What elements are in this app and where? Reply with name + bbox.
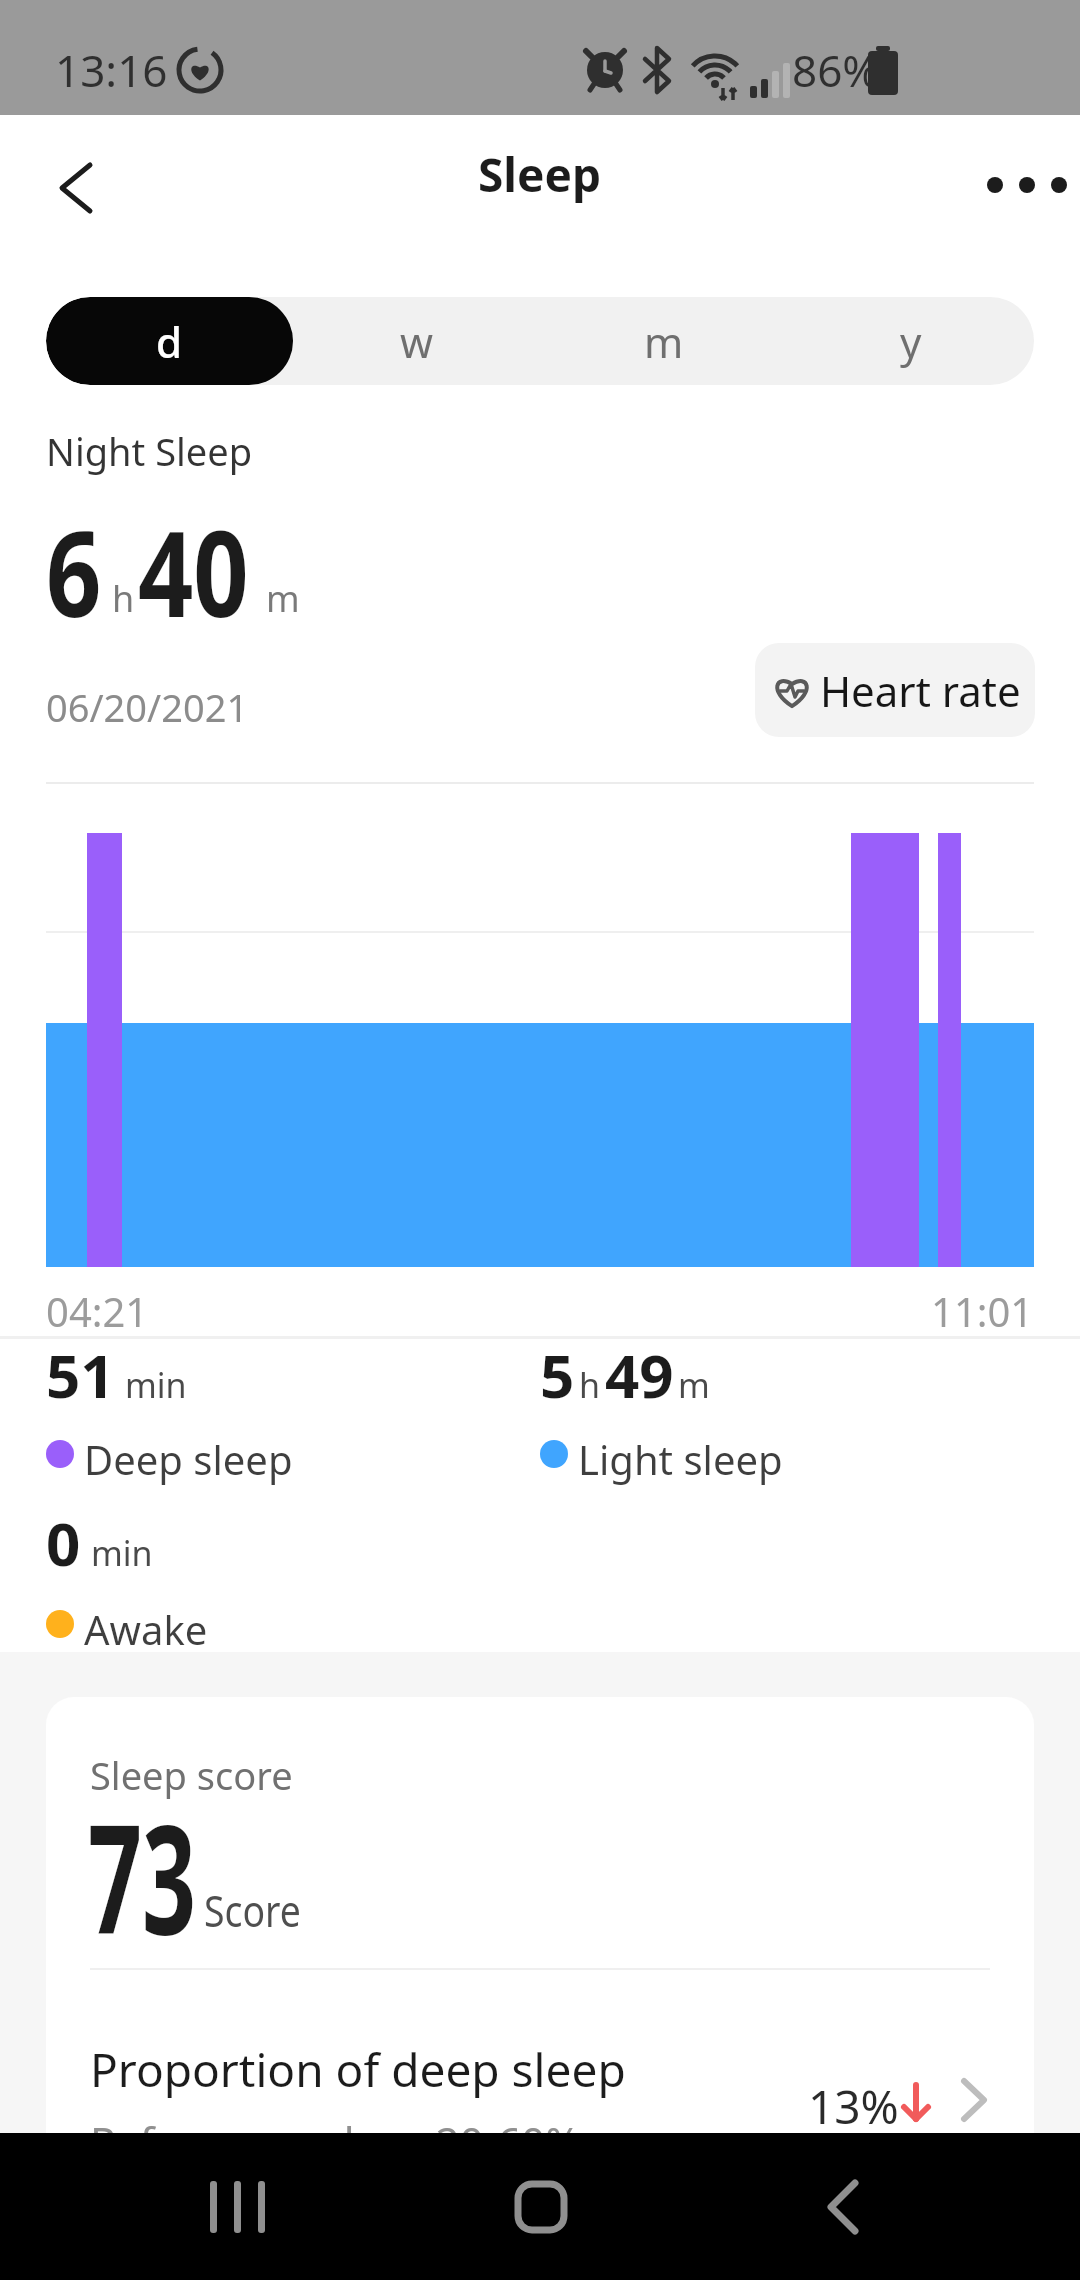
staticText: 86% bbox=[792, 40, 879, 100]
staticText: h bbox=[112, 574, 135, 623]
staticText: Night Sleep bbox=[46, 425, 253, 477]
staticText: 6 bbox=[46, 491, 102, 652]
button[interactable]: y bbox=[787, 297, 1034, 385]
staticText: Awake bbox=[84, 1602, 208, 1656]
button[interactable]: Heart rate bbox=[755, 643, 1035, 737]
staticText: y bbox=[900, 313, 922, 370]
button[interactable]: w bbox=[293, 297, 540, 385]
staticText: Sleep score bbox=[90, 1749, 293, 1801]
button[interactable]: Proportion of deep sleep bbox=[46, 2027, 1034, 2090]
staticText: 13:16 bbox=[55, 40, 168, 100]
staticText: h bbox=[579, 1362, 601, 1408]
button[interactable] bbox=[972, 155, 1080, 215]
staticText: Heart rate bbox=[820, 662, 1021, 719]
staticText: m bbox=[266, 574, 300, 623]
staticText: 49 bbox=[605, 1334, 674, 1416]
staticText: 51 bbox=[46, 1334, 115, 1416]
staticText: 40 bbox=[138, 491, 249, 652]
staticText: Reference values:20-60% bbox=[90, 2113, 581, 2170]
staticText: 73 bbox=[88, 1774, 196, 1978]
staticText: 06/20/2021 bbox=[46, 681, 249, 733]
staticText: min bbox=[125, 1362, 187, 1408]
staticText: 04:21 bbox=[46, 1284, 149, 1338]
staticText: d bbox=[156, 313, 183, 370]
staticText: w bbox=[400, 313, 434, 370]
staticText: 11:01 bbox=[931, 1284, 1034, 1338]
button[interactable] bbox=[765, 2153, 920, 2260]
staticText: m bbox=[678, 1362, 710, 1408]
staticText: Proportion of deep sleep bbox=[90, 2038, 626, 2101]
staticText: Light sleep bbox=[578, 1432, 783, 1486]
staticText: Score bbox=[204, 1880, 302, 1940]
staticText: 13% bbox=[808, 2075, 899, 2138]
staticText: 5 bbox=[540, 1334, 575, 1416]
staticText: 0 bbox=[46, 1502, 81, 1584]
staticText: Sleep bbox=[478, 143, 602, 206]
button[interactable] bbox=[40, 145, 120, 225]
button[interactable] bbox=[463, 2153, 618, 2260]
staticText: min bbox=[91, 1530, 153, 1576]
staticText: m bbox=[644, 313, 684, 370]
button[interactable]: d bbox=[46, 297, 293, 385]
button[interactable]: m bbox=[540, 297, 787, 385]
staticText: Deep sleep bbox=[84, 1432, 293, 1486]
button[interactable] bbox=[160, 2153, 315, 2260]
